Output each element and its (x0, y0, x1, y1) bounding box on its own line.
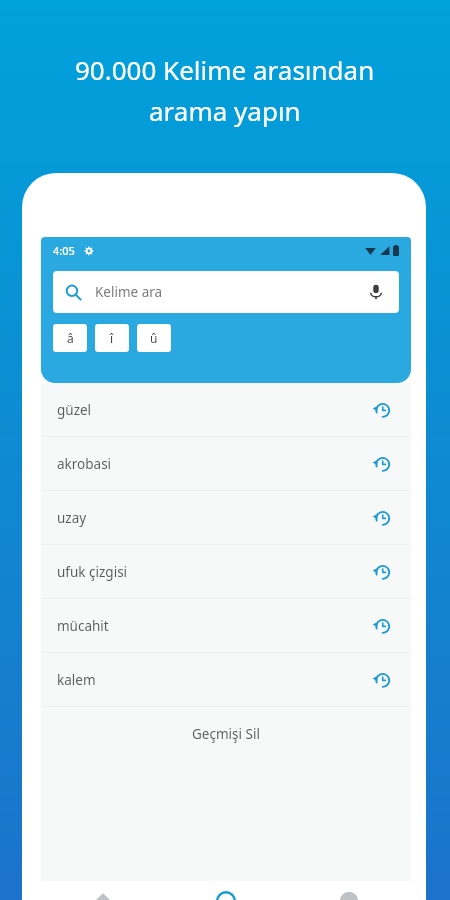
staticText: akrobasi (57, 455, 112, 473)
button[interactable]: akrobasi (41, 437, 411, 490)
button[interactable]: û (137, 324, 171, 352)
button[interactable]: mücahit (41, 599, 411, 652)
button[interactable]: â (53, 324, 87, 352)
staticText: Kelime ara (95, 283, 163, 301)
button[interactable]: Geçmişi Sil (41, 707, 411, 761)
button[interactable]: güzel (41, 383, 411, 436)
button[interactable]: Kelime ara (53, 271, 399, 313)
button[interactable]: Voice search (365, 281, 387, 303)
button[interactable]: Search history (369, 397, 395, 423)
button[interactable]: Search (196, 881, 256, 900)
staticText: 4:05 (53, 243, 75, 258)
staticText: kalem (57, 671, 96, 689)
button[interactable]: kalem (41, 653, 411, 706)
button[interactable]: î (95, 324, 129, 352)
staticText: uzay (57, 509, 87, 527)
button[interactable]: Search history (369, 451, 395, 477)
button[interactable]: Home (73, 881, 133, 900)
staticText: 90.000 Kelime arasından (75, 52, 375, 87)
staticText: â (67, 330, 74, 346)
button[interactable]: Search history (369, 613, 395, 639)
button[interactable]: uzay (41, 491, 411, 544)
staticText: Geçmişi Sil (192, 725, 260, 743)
staticText: î (110, 330, 114, 346)
staticText: û (150, 330, 158, 346)
button[interactable]: Profile (319, 881, 379, 900)
staticText: arama yapın (149, 93, 301, 128)
button[interactable]: Search history (369, 559, 395, 585)
staticText: güzel (57, 401, 92, 419)
button[interactable]: Search history (369, 505, 395, 531)
button[interactable]: ufuk çizgisi (41, 545, 411, 598)
staticText: mücahit (57, 617, 109, 635)
button[interactable]: Search history (369, 667, 395, 693)
staticText: ufuk çizgisi (57, 563, 128, 581)
